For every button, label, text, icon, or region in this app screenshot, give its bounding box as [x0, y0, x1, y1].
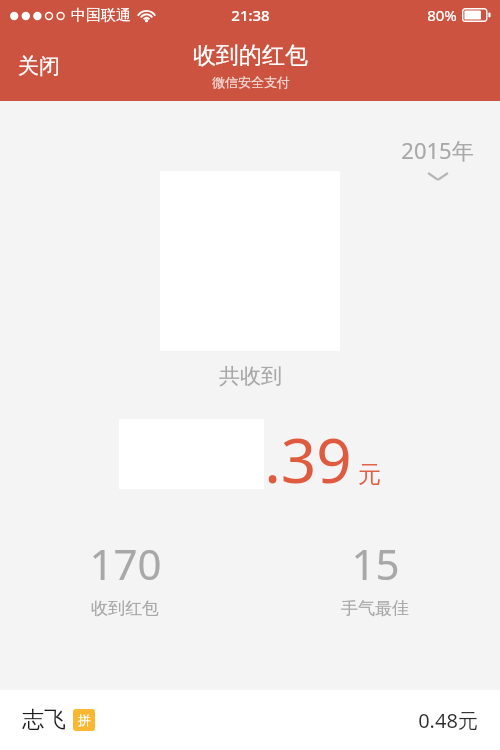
button[interactable]: 志飞: [0, 690, 500, 750]
staticText: 手气最佳: [341, 598, 409, 619]
staticText: 拼: [78, 712, 91, 728]
button[interactable]: 关闭: [6, 47, 72, 85]
staticText: 收到红包: [91, 598, 159, 619]
staticText: 80%: [427, 5, 457, 25]
staticText: 170: [89, 535, 162, 592]
staticText: 志飞: [22, 706, 66, 734]
button[interactable]: 15: [250, 533, 500, 621]
staticText: 中国联通: [71, 6, 131, 25]
staticText: 2015年: [401, 135, 474, 165]
staticText: .39: [264, 417, 352, 501]
staticText: 0.48元: [418, 707, 478, 734]
staticText: 微信安全支付: [212, 74, 290, 90]
button[interactable]: 2015年: [393, 133, 482, 184]
staticText: 关闭: [18, 53, 60, 79]
staticText: 元: [358, 460, 381, 489]
staticText: 共收到: [219, 363, 282, 389]
button[interactable]: 170: [0, 533, 250, 621]
staticText: 收到的红包: [193, 41, 308, 70]
staticText: 21:38: [231, 5, 270, 25]
staticText: 15: [351, 535, 400, 592]
